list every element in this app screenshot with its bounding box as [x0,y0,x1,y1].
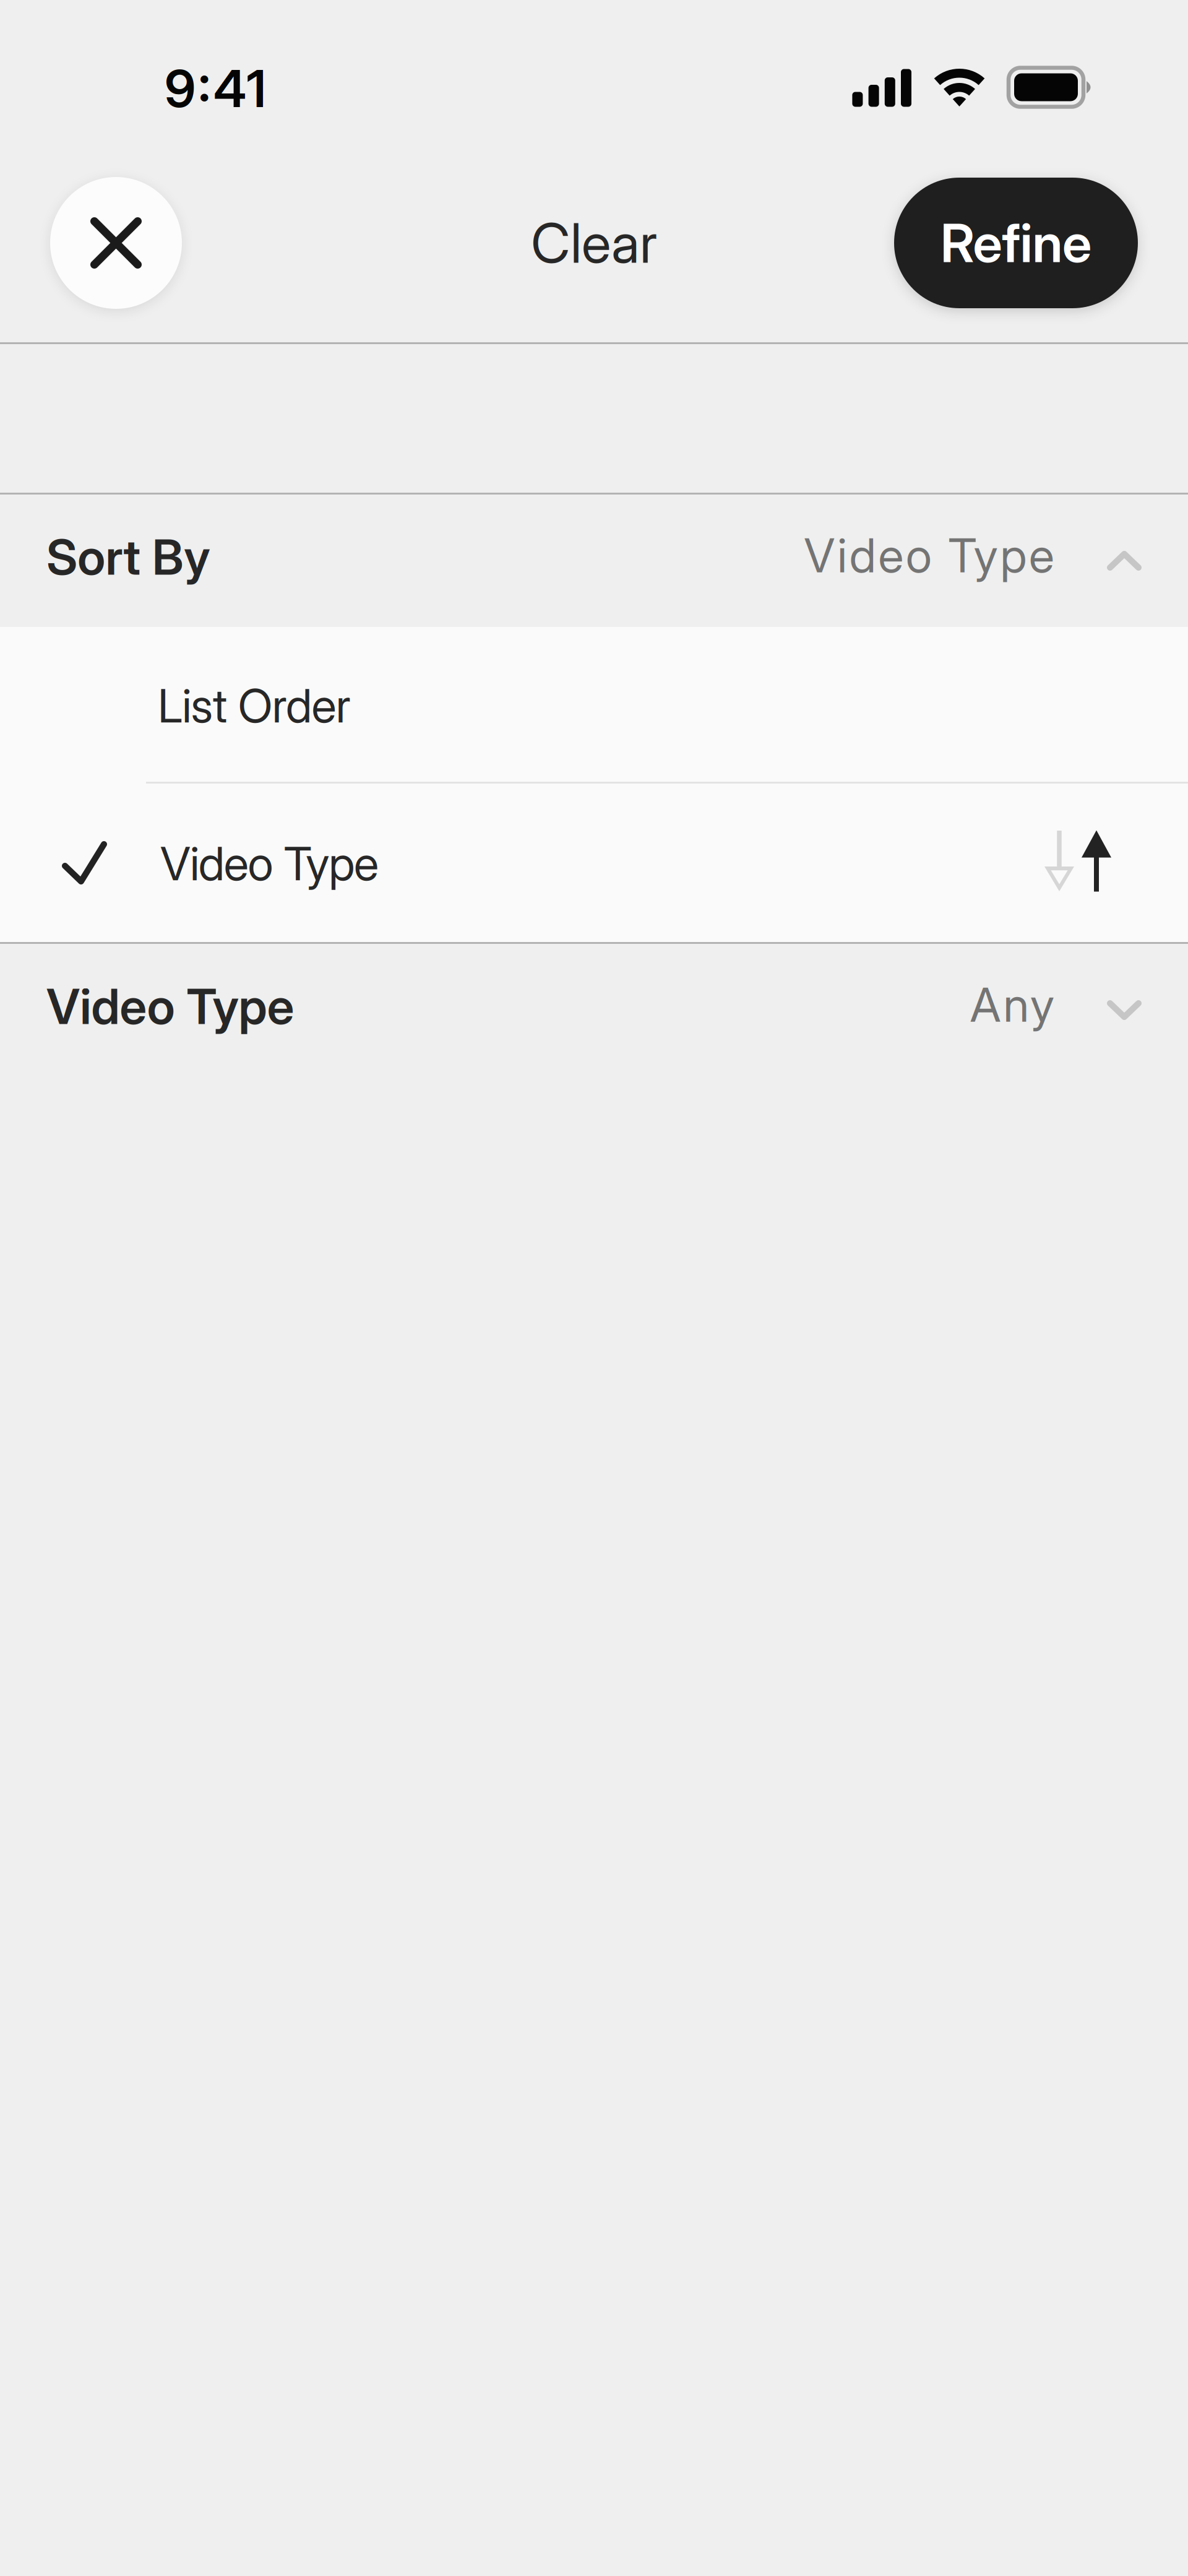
button[interactable]: Sort By [0,495,1188,627]
staticText: Video Type [804,527,1054,584]
staticText: 9:41 [165,58,266,119]
staticText: Video Type [160,835,379,891]
staticText: Sort By [46,528,210,587]
button[interactable]: Refine [894,178,1138,308]
staticText: Video Type [46,977,294,1036]
button[interactable]: Video Type [0,944,1188,1076]
staticText: List Order [158,678,351,733]
staticText: Any [970,976,1054,1033]
button[interactable]: Close [50,177,182,309]
button[interactable]: Video Type [0,784,1188,942]
staticText: Clear [531,210,657,276]
staticText: Refine [940,211,1091,275]
button[interactable]: List Order [0,627,1188,782]
